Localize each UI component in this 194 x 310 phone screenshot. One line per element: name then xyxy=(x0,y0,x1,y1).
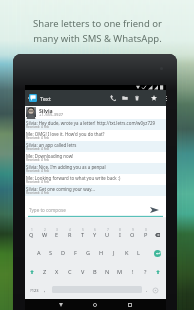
button[interactable]: Recent apps xyxy=(121,299,139,310)
staticText: ? xyxy=(144,268,147,276)
button[interactable]: 0 xyxy=(139,226,152,244)
button[interactable]: Silvia: Hey dude, wrote ya a letter! htt… xyxy=(25,119,166,130)
staticText: W xyxy=(42,231,48,239)
staticText: Silvia: Get one coming your way... xyxy=(26,186,95,192)
staticText: ! xyxy=(132,268,134,276)
staticText: G xyxy=(86,249,91,257)
button[interactable]: Home xyxy=(86,299,104,310)
staticText: Received: 4 Feb xyxy=(26,136,50,140)
button[interactable]: 9 xyxy=(126,226,139,244)
button[interactable]: 5 xyxy=(76,226,89,244)
button[interactable]: Archive xyxy=(119,90,131,106)
button[interactable]: ? xyxy=(139,263,152,281)
staticText: Received: 4 Feb xyxy=(26,158,50,162)
button[interactable]: Me: Looking forward to what you write ba… xyxy=(25,174,166,185)
button[interactable]: Emoji xyxy=(151,263,164,281)
staticText: Share letters to one friend or many with… xyxy=(33,17,162,45)
button[interactable]: J xyxy=(107,244,120,262)
staticText: H xyxy=(99,249,104,257)
button[interactable]: 3 xyxy=(50,226,63,244)
button[interactable]: Silvia: Nice, I'm adding you as a penpal xyxy=(25,163,166,174)
button[interactable]: Shift xyxy=(25,263,38,281)
button[interactable]: 8 xyxy=(113,226,126,244)
button[interactable]: More options xyxy=(161,90,171,106)
staticText: 5 xyxy=(82,228,84,232)
staticText: Type to compose xyxy=(29,207,66,213)
button[interactable]: H xyxy=(95,244,108,262)
button[interactable]: Type to compose xyxy=(25,199,166,222)
button[interactable]: Enter xyxy=(151,244,164,262)
staticText: Silvia: an app called letrs xyxy=(26,142,77,148)
staticText: R xyxy=(68,231,72,239)
staticText: A xyxy=(37,249,41,257)
button[interactable]: Z xyxy=(38,263,51,281)
staticText: 8 xyxy=(119,228,121,232)
button[interactable]: Silvia: Get one coming your way... xyxy=(25,185,166,196)
button[interactable]: F xyxy=(69,244,82,262)
button[interactable]: S xyxy=(44,244,57,262)
staticText: ?123 xyxy=(30,288,39,293)
staticText: Z xyxy=(43,268,47,276)
staticText: T xyxy=(81,231,85,239)
button[interactable]: A xyxy=(32,244,45,262)
staticText: B xyxy=(93,268,97,276)
button[interactable]: V xyxy=(76,263,89,281)
staticText: Received: 4 Feb xyxy=(26,125,50,129)
button[interactable]: N xyxy=(101,263,114,281)
staticText: 1 xyxy=(31,228,33,232)
staticText: J xyxy=(113,249,115,257)
staticText: L xyxy=(137,249,140,257)
button[interactable]: Favourite xyxy=(148,90,160,106)
button[interactable]: D xyxy=(57,244,70,262)
button[interactable]: Navigate up xyxy=(25,90,32,106)
button[interactable]: Call xyxy=(107,90,119,106)
button[interactable]: G xyxy=(82,244,95,262)
button[interactable]: 2 xyxy=(38,226,51,244)
staticText: F xyxy=(74,249,77,257)
staticText: Received: 4 Feb xyxy=(26,169,50,173)
button[interactable]: ?123 xyxy=(25,282,43,299)
button[interactable]: Backspace xyxy=(151,226,164,244)
button[interactable]: , xyxy=(38,282,51,299)
staticText: 4 xyxy=(69,228,71,232)
button[interactable]: 6 xyxy=(88,226,101,244)
button[interactable]: Silvia: an app called letrs xyxy=(25,141,166,152)
button[interactable]: . xyxy=(140,282,153,299)
staticText: S xyxy=(49,249,53,257)
button[interactable]: Silvia xyxy=(25,106,166,119)
staticText: V xyxy=(81,268,85,276)
button[interactable]: 7 xyxy=(101,226,114,244)
staticText: Q xyxy=(29,231,34,239)
staticText: Silvia xyxy=(39,107,53,114)
staticText: Received: 4 Feb xyxy=(26,180,50,184)
button[interactable]: L xyxy=(132,244,145,262)
button[interactable]: C xyxy=(63,263,76,281)
button[interactable]: 4 xyxy=(63,226,76,244)
staticText: 6 xyxy=(94,228,96,232)
staticText: C xyxy=(68,268,72,276)
button[interactable]: K xyxy=(120,244,133,262)
staticText: U xyxy=(105,231,110,239)
button[interactable]: ! xyxy=(126,263,139,281)
button[interactable]: X xyxy=(50,263,63,281)
staticText: M xyxy=(117,268,123,276)
button[interactable]: Me: OMG! I love it. How'd you do that? xyxy=(25,130,166,141)
staticText: Received: 4 Feb xyxy=(26,147,50,151)
staticText: 9 xyxy=(132,228,134,232)
button[interactable]: Back xyxy=(52,299,70,310)
button[interactable]: 1 xyxy=(25,226,38,244)
button[interactable]: B xyxy=(88,263,101,281)
button[interactable]: Voice input xyxy=(149,282,162,299)
staticText: 3 xyxy=(56,228,58,232)
other: Send xyxy=(150,207,159,213)
button[interactable]: Me: Downloading now! xyxy=(25,152,166,163)
staticText: . xyxy=(146,287,148,294)
staticText: Me: Looking forward to what you write ba… xyxy=(26,175,121,181)
staticText: O xyxy=(130,231,135,239)
button[interactable]: Delete xyxy=(131,90,143,106)
staticText: Silvia: Nice, I'm adding you as a penpal xyxy=(26,164,106,170)
staticText: Me: Downloading now! xyxy=(26,153,74,159)
staticText: Me: OMG! I love it. How'd you do that? xyxy=(26,131,105,137)
button[interactable]: M xyxy=(113,263,126,281)
